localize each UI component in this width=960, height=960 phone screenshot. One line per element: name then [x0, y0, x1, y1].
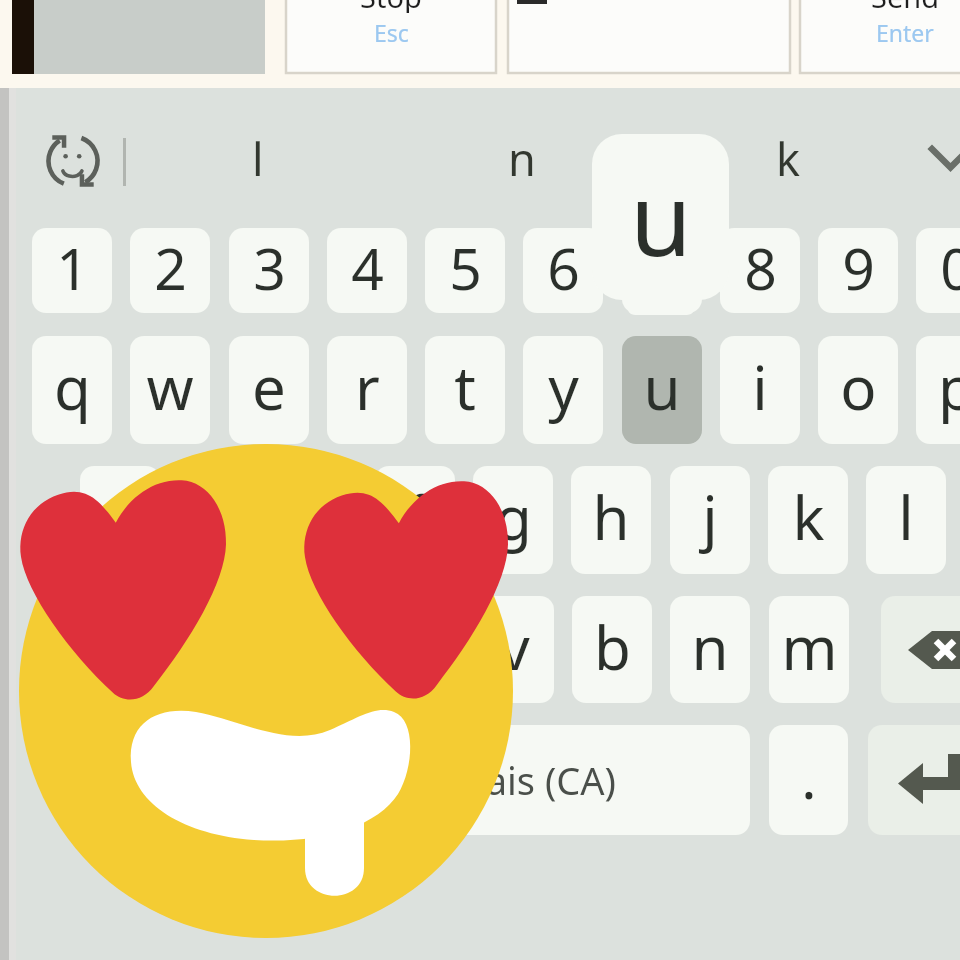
button[interactable]: h — [571, 466, 651, 574]
staticText: Enter — [876, 17, 934, 47]
button[interactable]: 9 — [818, 228, 898, 313]
staticText: q — [54, 346, 91, 428]
staticText: y — [548, 346, 579, 428]
button[interactable]: y — [523, 336, 603, 444]
button[interactable]: l — [866, 466, 946, 574]
button[interactable]: Enter — [868, 725, 960, 835]
staticText: 5 — [449, 229, 482, 307]
staticText: l — [898, 476, 914, 558]
staticText: s — [204, 476, 233, 558]
button[interactable]: u — [622, 336, 702, 444]
staticText: u — [630, 149, 692, 285]
button[interactable]: n — [447, 122, 597, 194]
staticText: 2 — [154, 229, 187, 307]
staticText: n — [691, 606, 729, 688]
staticText: b — [594, 606, 631, 688]
staticText: g — [495, 476, 532, 558]
button[interactable] — [508, 0, 790, 73]
staticText: d — [299, 476, 336, 558]
staticText: m — [781, 606, 838, 688]
button[interactable]: l — [183, 122, 333, 194]
staticText: 9 — [842, 229, 875, 307]
button[interactable]: f — [375, 466, 455, 574]
button[interactable]: 1 — [32, 228, 112, 313]
staticText: 0 — [940, 229, 960, 307]
button[interactable]: 4 — [327, 228, 407, 313]
button[interactable]: 6 — [523, 228, 603, 313]
button[interactable]: k — [768, 466, 848, 574]
staticText: 6 — [547, 229, 580, 307]
staticText: 1 — [56, 229, 89, 307]
staticText: 8 — [744, 229, 777, 307]
staticText: e — [252, 346, 286, 428]
button[interactable]: s — [178, 466, 258, 574]
button[interactable]: q — [32, 336, 112, 444]
staticText: k — [776, 128, 801, 189]
button[interactable]: Stop — [286, 0, 496, 73]
button[interactable]: 8 — [720, 228, 800, 313]
button[interactable]: Expand suggestions — [912, 128, 960, 194]
staticText: i — [752, 346, 768, 428]
staticText: Esc — [374, 17, 409, 47]
button[interactable]: m — [769, 596, 849, 703]
button[interactable]: Backspace — [881, 596, 960, 703]
staticText: z — [205, 606, 234, 688]
staticText: . — [801, 738, 817, 816]
staticText: w — [146, 346, 194, 428]
staticText: Français (CA) — [388, 754, 617, 806]
button[interactable]: e — [229, 336, 309, 444]
staticText: 4 — [351, 229, 384, 307]
staticText: p — [938, 346, 960, 428]
staticText: x — [301, 606, 333, 688]
button[interactable]: p — [916, 336, 960, 444]
staticText: u — [643, 346, 681, 428]
button[interactable]: i — [720, 336, 800, 444]
staticText: t — [454, 346, 476, 428]
button[interactable]: x — [277, 596, 357, 703]
button[interactable]: Switch to emoji — [40, 128, 106, 194]
staticText: o — [840, 346, 877, 428]
button[interactable]: k — [713, 122, 863, 194]
staticText: f — [405, 476, 426, 558]
button[interactable]: d — [277, 466, 357, 574]
staticText: v — [499, 606, 530, 688]
staticText: Send — [871, 0, 940, 13]
button[interactable]: a — [80, 466, 160, 574]
staticText: j — [702, 476, 718, 558]
staticText: h — [592, 476, 630, 558]
button[interactable]: Français (CA) — [254, 725, 750, 835]
button[interactable]: 7 — [622, 228, 702, 313]
button[interactable]: g — [473, 466, 553, 574]
button[interactable]: r — [327, 336, 407, 444]
button[interactable]: Shift — [60, 596, 170, 703]
staticText: n — [508, 128, 536, 189]
button[interactable]: v — [474, 596, 554, 703]
staticText: l — [252, 128, 264, 189]
staticText: a — [103, 476, 137, 558]
button[interactable]: 3 — [229, 228, 309, 313]
staticText: r — [355, 346, 380, 428]
button[interactable]: Send — [800, 0, 960, 73]
staticText: 7 — [646, 229, 679, 307]
staticText: Stop — [360, 0, 422, 13]
button[interactable]: z — [179, 596, 259, 703]
button[interactable]: t — [425, 336, 505, 444]
button[interactable]: 2 — [130, 228, 210, 313]
staticText: k — [792, 476, 825, 558]
button[interactable]: j — [670, 466, 750, 574]
button[interactable]: 0 — [916, 228, 960, 313]
button[interactable]: w — [130, 336, 210, 444]
button[interactable]: o — [818, 336, 898, 444]
button[interactable]: 5 — [425, 228, 505, 313]
button[interactable]: b — [572, 596, 652, 703]
staticText: 3 — [253, 229, 286, 307]
button[interactable]: c — [376, 596, 456, 703]
button[interactable]: n — [670, 596, 750, 703]
button[interactable]: . — [769, 725, 848, 835]
